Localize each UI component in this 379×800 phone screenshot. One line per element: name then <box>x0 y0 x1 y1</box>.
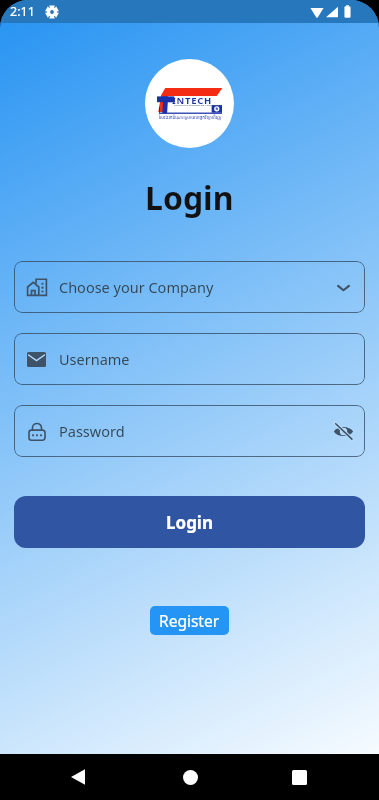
button[interactable]: Register <box>150 606 229 635</box>
button[interactable]: Login <box>14 496 365 548</box>
button[interactable]: Choose your Company <box>14 261 365 313</box>
staticText: Login <box>145 176 234 220</box>
staticText: Choose your Company <box>59 277 214 297</box>
staticText: INTECH <box>172 94 213 107</box>
button[interactable]: Password <box>14 405 365 457</box>
button[interactable]: Back <box>55 754 101 800</box>
button[interactable]: Expand company list <box>333 277 354 298</box>
button[interactable]: Recent apps <box>276 754 322 800</box>
staticText: 2:11 <box>10 3 35 20</box>
button[interactable]: Home <box>167 754 213 800</box>
staticText: សែវងរកដំណោះស្រាយបច្ចេកវិទ្យាហិរញ្ញវត្ថុ <box>157 114 223 120</box>
button[interactable]: Username <box>14 333 365 385</box>
staticText: Password <box>59 421 125 441</box>
staticText: Register <box>159 610 220 631</box>
staticText: Login <box>166 511 214 534</box>
staticText: Username <box>59 349 130 369</box>
staticText: FINANCIAL TECHNOLOGY SOLUTIONS <box>174 104 222 107</box>
button[interactable]: Toggle password visibility <box>333 422 354 441</box>
